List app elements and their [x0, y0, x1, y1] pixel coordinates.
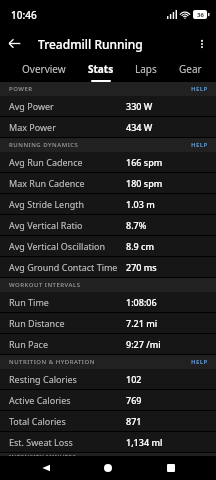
staticText: Active Calories — [9, 394, 126, 406]
button[interactable]: HELP — [183, 355, 216, 369]
button[interactable]: Avg Stride Length — [0, 194, 216, 214]
staticText: WORKOUT INTERVALS — [9, 281, 81, 289]
staticText: HELP — [191, 85, 208, 93]
button[interactable]: Stats — [88, 58, 114, 82]
button[interactable]: Active Calories — [0, 390, 216, 410]
button[interactable]: Home — [91, 456, 125, 480]
button[interactable]: Total Calories — [0, 411, 216, 431]
staticText: HELP — [191, 358, 208, 366]
staticText: 1:08:06 — [126, 296, 157, 308]
staticText: RUNNING DYNAMICS — [9, 141, 79, 149]
button[interactable]: Max Power — [0, 117, 216, 137]
staticText: Avg Power — [9, 100, 126, 112]
button[interactable]: Back — [29, 456, 63, 480]
button[interactable]: Avg Ground Contact Time — [0, 257, 216, 277]
button[interactable]: Est. Sweat Loss — [0, 432, 216, 452]
staticText: Run Distance — [9, 317, 126, 329]
staticText: 270 ms — [126, 261, 157, 273]
button[interactable]: Back — [0, 29, 29, 58]
button[interactable]: Resting Calories — [0, 369, 216, 389]
staticText: POWER — [9, 85, 33, 93]
button[interactable]: Gear — [179, 58, 202, 82]
staticText: Avg Ground Contact Time — [9, 261, 126, 273]
staticText: 434 W — [126, 121, 153, 133]
staticText: Total Calories — [9, 415, 126, 427]
staticText: 1.03 m — [126, 198, 155, 210]
staticText: 102 — [126, 373, 142, 385]
staticText: Max Run Cadence — [9, 177, 126, 189]
staticText: 8.9 cm — [126, 240, 155, 252]
staticText: 330 W — [126, 100, 153, 112]
staticText: 10:46 — [11, 8, 37, 22]
button[interactable]: More options — [187, 29, 216, 58]
button[interactable]: Avg Vertical Ratio — [0, 215, 216, 235]
button[interactable]: Avg Run Cadence — [0, 152, 216, 172]
staticText: NUTRITION & HYDRATION — [9, 358, 95, 366]
staticText: 769 — [126, 394, 142, 406]
button[interactable]: Overview — [22, 58, 66, 82]
staticText: 166 spm — [126, 156, 163, 168]
staticText: 871 — [126, 415, 142, 427]
button[interactable]: Avg Vertical Oscillation — [0, 236, 216, 256]
staticText: Avg Vertical Ratio — [9, 219, 126, 231]
button[interactable]: Recent apps — [154, 456, 188, 480]
staticText: Max Power — [9, 121, 126, 133]
staticText: Run Time — [9, 296, 126, 308]
staticText: Treadmill Running — [38, 36, 143, 52]
staticText: Gear — [179, 62, 202, 76]
button[interactable]: Avg Power — [0, 96, 216, 116]
staticText: Run Pace — [9, 338, 126, 350]
button[interactable]: HELP — [183, 82, 216, 96]
staticText: Stats — [88, 62, 114, 76]
staticText: 9:27 /mi — [126, 338, 161, 350]
staticText: Laps — [135, 62, 157, 76]
staticText: Est. Sweat Loss — [9, 436, 126, 448]
button[interactable]: Run Distance — [0, 313, 216, 333]
staticText: 8.7% — [126, 219, 147, 231]
staticText: Resting Calories — [9, 373, 126, 385]
button[interactable]: Run Pace — [0, 334, 216, 354]
button[interactable]: HELP — [183, 138, 216, 152]
button[interactable]: Run Time — [0, 292, 216, 312]
staticText: Avg Stride Length — [9, 198, 126, 210]
button[interactable]: Laps — [135, 58, 157, 82]
staticText: INTENSITY MINUTES — [9, 453, 77, 456]
staticText: 180 spm — [126, 177, 163, 189]
button[interactable]: Max Run Cadence — [0, 173, 216, 193]
staticText: Overview — [22, 62, 66, 76]
staticText: 36 — [197, 11, 204, 19]
staticText: 7.21 mi — [126, 317, 158, 329]
staticText: HELP — [191, 141, 208, 149]
staticText: Avg Vertical Oscillation — [9, 240, 126, 252]
staticText: 1,134 ml — [126, 436, 163, 448]
staticText: Avg Run Cadence — [9, 156, 126, 168]
